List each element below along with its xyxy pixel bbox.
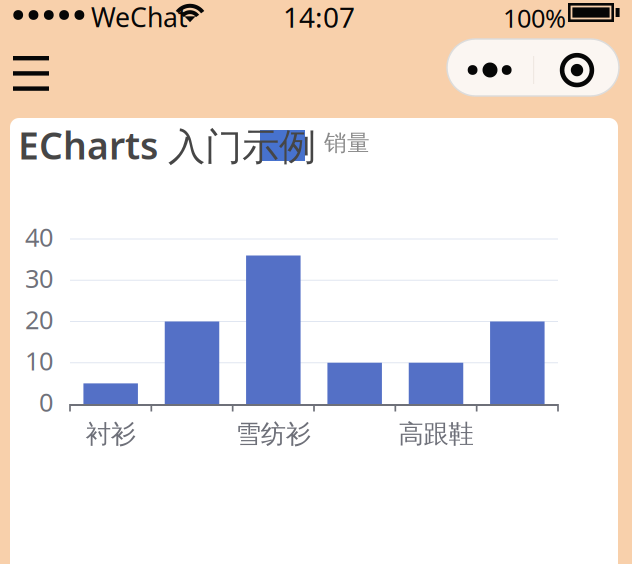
staticText: 100% [503,1,566,35]
staticText: 10 [25,344,53,377]
staticText: 0 [39,385,53,419]
button[interactable]: Close mini program [533,39,619,96]
button[interactable]: Menu [5,45,57,97]
staticText: WeChat [91,0,188,35]
staticText: 30 [25,261,53,295]
staticText: 40 [25,220,53,254]
staticText: 衬衫 [86,418,136,449]
button[interactable]: More [447,39,533,96]
staticText: 14:07 [283,0,355,36]
staticText: 20 [25,303,53,336]
staticText: 雪纺衫 [236,418,311,449]
staticText: 销量 [324,129,370,157]
staticText: 高跟鞋 [398,418,473,449]
staticText: ECharts 入门示例 [18,120,316,170]
